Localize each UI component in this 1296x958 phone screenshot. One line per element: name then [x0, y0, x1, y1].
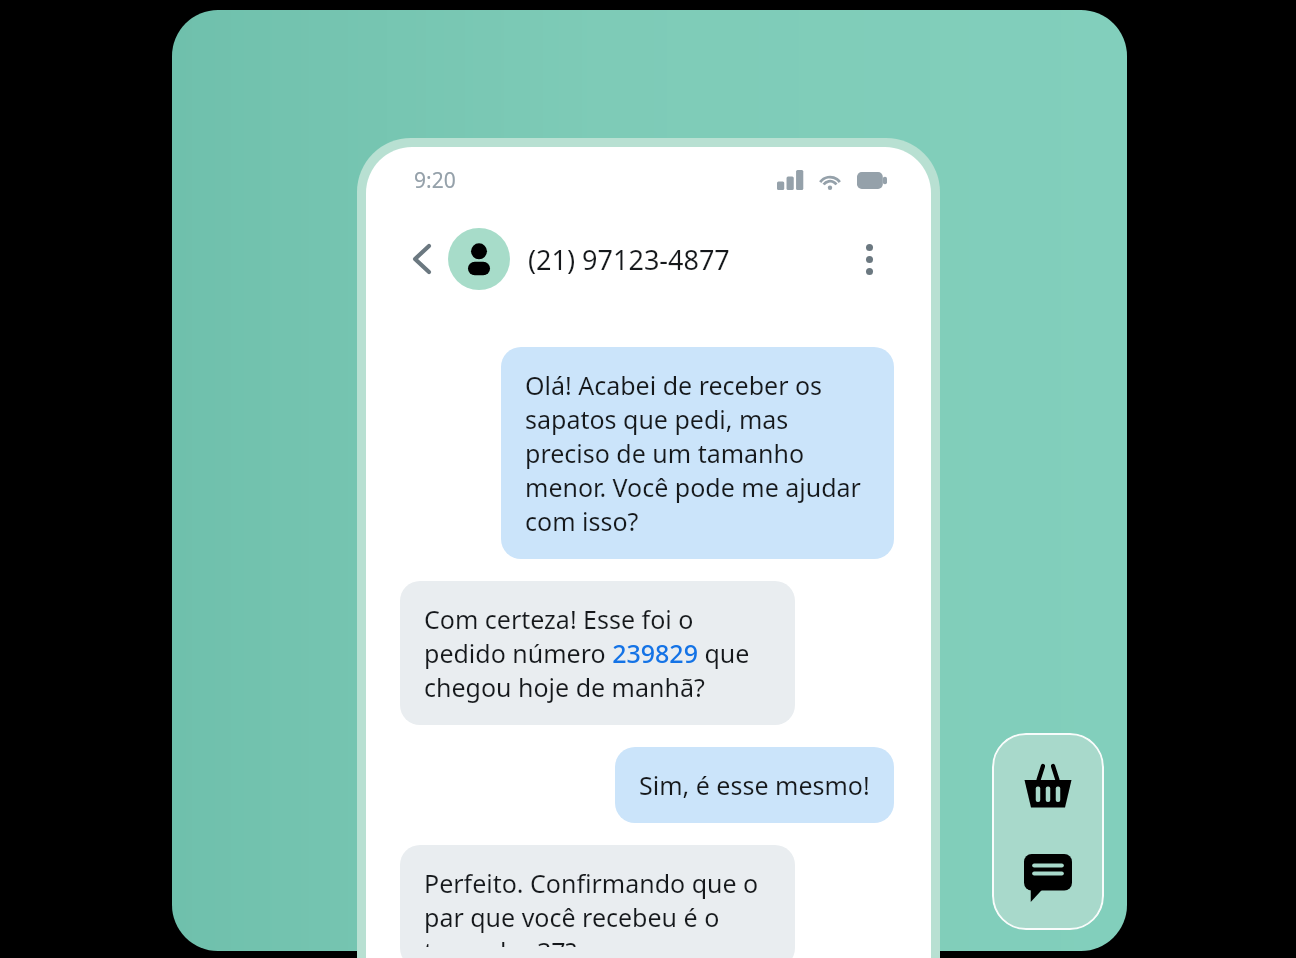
button[interactable]: Olá! Acabei de receber os sapatos que pe… — [501, 347, 894, 559]
button[interactable]: Messages — [1013, 843, 1083, 913]
button[interactable]: Perfeito. Confirmando que o par que você… — [400, 845, 795, 958]
staticText: Com certeza! Esse foi o pedido número 23… — [424, 602, 771, 704]
button[interactable]: Back — [404, 241, 440, 277]
button[interactable]: More options — [849, 239, 889, 279]
staticText: Sim, é esse mesmo! — [639, 768, 870, 802]
button[interactable]: Cart — [1013, 751, 1083, 821]
staticText: (21) 97123-4877 — [528, 241, 730, 278]
button[interactable]: Contact avatar — [448, 228, 510, 290]
button[interactable]: Com certeza! Esse foi o pedido número 23… — [400, 581, 795, 725]
staticText: 9:20 — [414, 166, 456, 195]
staticText: Olá! Acabei de receber os sapatos que pe… — [525, 368, 870, 538]
staticText: Perfeito. Confirmando que o par que você… — [424, 866, 771, 947]
button[interactable]: Sim, é esse mesmo! — [615, 747, 894, 823]
